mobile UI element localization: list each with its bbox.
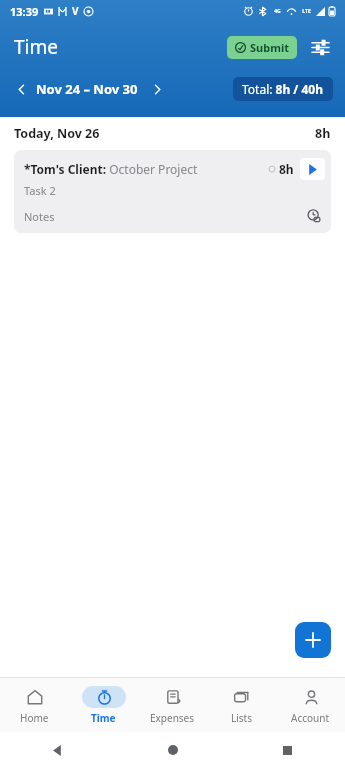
button[interactable]: Next week: [144, 76, 170, 102]
staticText: Today, Nov 26: [14, 125, 100, 142]
button[interactable]: Time history: [303, 205, 325, 227]
staticText: V: [72, 4, 79, 18]
button[interactable]: Submit: [227, 36, 297, 59]
staticText: Submit: [250, 40, 289, 55]
staticText: Lists: [231, 711, 253, 725]
button[interactable]: Time: [69, 678, 138, 732]
button[interactable]: Expenses: [138, 678, 207, 732]
button[interactable]: *Tom's Client: October Project: [14, 150, 331, 233]
staticText: Nov 24 – Nov 30: [36, 80, 138, 98]
staticText: Time: [14, 34, 58, 60]
staticText: *Tom's Client: October Project: [24, 161, 198, 177]
button[interactable]: Total: 8h / 40h: [233, 77, 333, 101]
button[interactable]: Previous week: [8, 76, 34, 102]
staticText: Account: [291, 711, 330, 725]
staticText: Total: 8h / 40h: [242, 81, 324, 97]
button[interactable]: Filter settings: [305, 32, 335, 62]
staticText: Home: [20, 711, 49, 725]
staticText: Task 2: [24, 183, 56, 198]
button[interactable]: Lists: [207, 678, 276, 732]
staticText: Notes: [24, 209, 55, 224]
button[interactable]: Start timer: [300, 158, 325, 180]
button[interactable]: Add time entry: [295, 622, 331, 658]
button[interactable]: Account: [276, 678, 345, 732]
staticText: Time: [91, 711, 116, 725]
staticText: 8h: [315, 125, 331, 142]
button[interactable]: Home: [0, 678, 69, 732]
staticText: Expenses: [150, 711, 195, 725]
staticText: LTE: [302, 8, 311, 15]
staticText: 13:39: [10, 4, 39, 19]
staticText: 8h: [279, 161, 294, 177]
staticText: 4G: [274, 8, 281, 15]
